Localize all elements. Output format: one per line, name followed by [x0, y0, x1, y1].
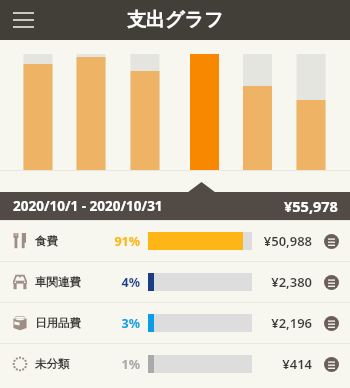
staticText: 食費	[35, 234, 58, 248]
staticText: 3%	[102, 315, 140, 332]
staticText: 91%	[102, 233, 140, 250]
staticText: ¥414	[263, 355, 312, 373]
staticText: 4%	[102, 274, 140, 291]
button[interactable]: More options	[324, 316, 339, 331]
button[interactable]: More options	[324, 275, 339, 290]
staticText: ¥2,196	[263, 314, 312, 332]
staticText: ¥2,380	[263, 273, 312, 291]
button[interactable]: 食費	[0, 221, 350, 261]
button[interactable]: More options	[324, 357, 339, 372]
button[interactable]: 車関連費	[0, 262, 350, 302]
staticText: 1%	[102, 356, 140, 373]
button[interactable]: 日用品費	[0, 303, 350, 343]
staticText: 車関連費	[35, 275, 81, 289]
staticText: 2020/10/1 - 2020/10/31	[13, 197, 163, 215]
staticText: 未分類	[35, 357, 70, 371]
staticText: ¥55,978	[284, 196, 338, 216]
staticText: ¥50,988	[263, 232, 312, 250]
staticText: 支出グラフ	[127, 8, 224, 32]
button[interactable]: More options	[324, 234, 339, 249]
button[interactable]: Menu	[3, 0, 43, 40]
staticText: 日用品費	[35, 316, 81, 330]
button[interactable]: 未分類	[0, 344, 350, 384]
